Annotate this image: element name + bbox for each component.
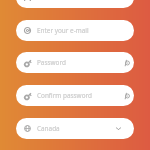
- other: Password: [24, 92, 32, 100]
- other: Email: [24, 27, 31, 34]
- button[interactable]: Password: [16, 85, 134, 106]
- button[interactable]: Name: [16, 0, 134, 8]
- button[interactable]: Country: [16, 118, 134, 139]
- staticText: Password: [37, 58, 124, 67]
- button[interactable]: Select country: [116, 126, 121, 131]
- other: Name: [24, 0, 31, 1]
- staticText: Enter your e-mail: [37, 26, 128, 35]
- button[interactable]: Password: [16, 52, 134, 73]
- button[interactable]: Email: [16, 20, 134, 41]
- button[interactable]: Show password: [124, 60, 130, 66]
- staticText: Canada: [37, 124, 116, 133]
- button[interactable]: Show password: [124, 93, 130, 99]
- other: Password: [24, 59, 32, 67]
- other: Country: [24, 125, 31, 132]
- staticText: Confirm password: [37, 91, 124, 100]
